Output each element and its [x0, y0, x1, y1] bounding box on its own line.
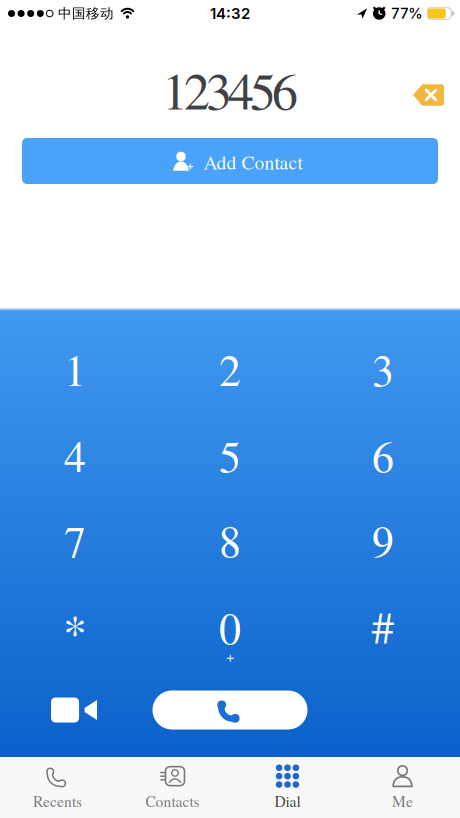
button[interactable]: 7	[20, 503, 130, 581]
staticText: Me	[392, 791, 413, 811]
button[interactable]: +	[22, 138, 438, 184]
staticText: 77%	[391, 5, 422, 22]
button[interactable]: 5	[175, 418, 285, 496]
button[interactable]: 0	[175, 580, 285, 674]
button[interactable]: 6	[328, 418, 438, 496]
staticText: 8	[219, 511, 241, 569]
staticText: 4	[64, 426, 86, 484]
button[interactable]: 8	[175, 503, 285, 581]
staticText: Add Contact	[203, 149, 302, 175]
button[interactable]: 2	[175, 332, 285, 410]
button[interactable]: 3	[328, 332, 438, 410]
staticText: 9	[372, 511, 394, 569]
staticText: +	[226, 646, 234, 666]
button[interactable]: Call	[152, 690, 307, 729]
staticText: 1	[64, 340, 86, 398]
staticText: *	[63, 599, 87, 663]
staticText: Dial	[274, 791, 300, 811]
button[interactable]: Delete	[407, 78, 449, 112]
staticText: #	[371, 596, 394, 656]
staticText: 14:32	[210, 4, 250, 22]
button[interactable]: 9	[328, 503, 438, 581]
button[interactable]: #	[328, 589, 438, 667]
button[interactable]: Me	[345, 758, 460, 816]
staticText: +	[186, 159, 193, 173]
button[interactable]: 4	[20, 418, 130, 496]
staticText: 6	[372, 426, 394, 484]
staticText: 0	[219, 598, 241, 656]
button[interactable]: Recents	[0, 758, 115, 816]
staticText: 123456	[162, 55, 298, 124]
staticText: 中国移动	[58, 5, 114, 22]
staticText: Recents	[33, 791, 82, 811]
button[interactable]: Contacts	[115, 758, 230, 816]
button[interactable]: Dial	[230, 758, 345, 816]
staticText: 7	[64, 511, 86, 569]
staticText: 5	[219, 426, 241, 484]
button[interactable]: *	[20, 589, 130, 667]
staticText: 2	[219, 340, 241, 398]
staticText: Contacts	[145, 791, 199, 811]
button[interactable]: 1	[20, 332, 130, 410]
button[interactable]: Video call	[39, 686, 109, 734]
staticText: 3	[372, 340, 394, 398]
